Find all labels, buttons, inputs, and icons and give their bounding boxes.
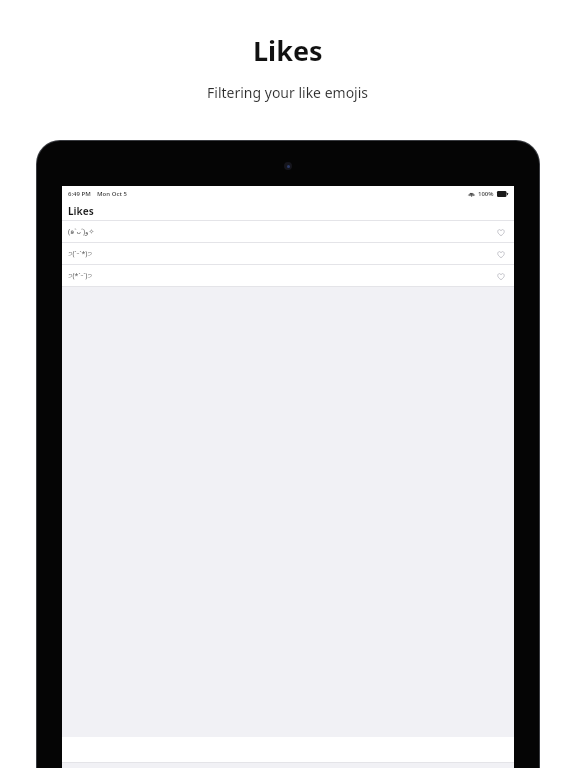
staticText: Mon Oct 5 bbox=[97, 190, 127, 198]
button[interactable]: Like bbox=[495, 270, 507, 282]
staticText: ੭(ˊᵕˋ*)੭ bbox=[68, 249, 92, 259]
staticText: Likes bbox=[68, 204, 94, 218]
button[interactable]: ੭(ˊᵕˋ*)੭ bbox=[62, 243, 514, 264]
button[interactable]: ੭(*ˊᵕˋ)੭ bbox=[62, 265, 514, 286]
staticText: Filtering your like emojis bbox=[207, 83, 369, 102]
staticText: Likes bbox=[253, 32, 323, 69]
button[interactable]: Like bbox=[495, 226, 507, 238]
staticText: 6:49 PM bbox=[68, 190, 91, 198]
staticText: (๑˃ᴗ˂)ﻭ✧ bbox=[68, 226, 95, 237]
staticText: 100% bbox=[478, 190, 494, 198]
button[interactable]: Like bbox=[495, 248, 507, 260]
button[interactable]: (๑˃ᴗ˂)ﻭ✧ bbox=[62, 221, 514, 242]
staticText: ੭(*ˊᵕˋ)੭ bbox=[68, 271, 92, 281]
